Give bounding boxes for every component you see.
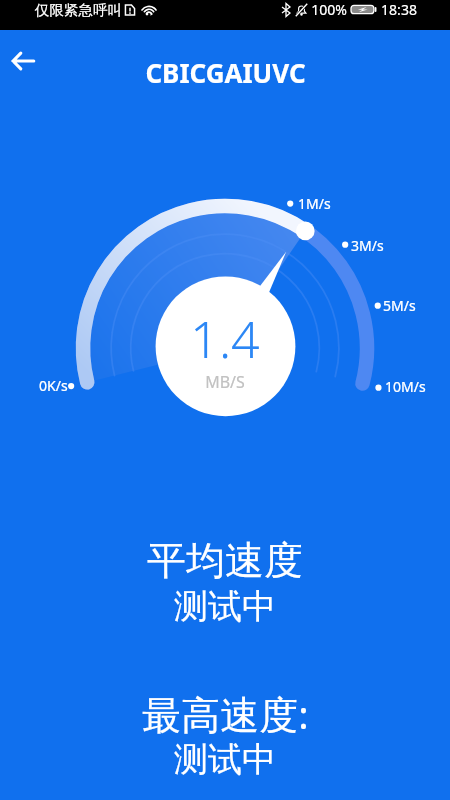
staticText: CBICGAIUVC [145,55,306,90]
staticText: 100% [311,0,347,19]
staticText: 平均速度 [147,536,303,585]
staticText: 测试中 [174,585,276,628]
staticText: 18:38 [381,0,417,19]
staticText: 3M/s [351,236,384,255]
staticText: 1M/s [298,194,331,213]
staticText: 测试中 [174,738,276,781]
staticText: 5M/s [383,296,416,315]
staticText: 仅限紧急呼叫 [35,1,122,19]
staticText: 10M/s [385,377,426,396]
staticText: 1.4 [190,305,260,373]
staticText: MB/S [205,371,245,393]
staticText: 0K/s [39,376,68,395]
staticText: 最高速度: [142,687,309,740]
button[interactable]: Back [1,39,45,83]
